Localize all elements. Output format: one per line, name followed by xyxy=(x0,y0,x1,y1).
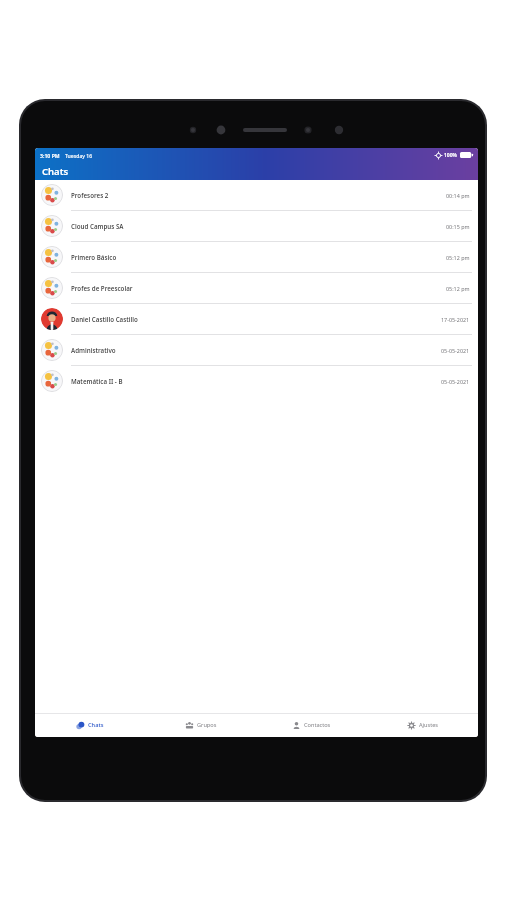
button[interactable]: Profesores 2 xyxy=(35,180,478,211)
staticText: Ajustes xyxy=(419,721,439,729)
staticText: 05:12 pm xyxy=(446,254,470,261)
staticText: Primero Básico xyxy=(71,253,117,261)
staticText: 17-05-2021 xyxy=(441,316,470,323)
button[interactable]: Profes de Preescolar xyxy=(35,273,478,304)
staticText: Daniel Castillo Castillo xyxy=(71,315,138,323)
staticText: 05-05-2021 xyxy=(441,378,470,385)
button[interactable]: Contactos xyxy=(256,713,367,737)
staticText: 3:10 PM xyxy=(40,152,60,159)
staticText: Chats xyxy=(88,721,104,729)
staticText: Cloud Campus SA xyxy=(71,222,124,230)
staticText: 00:14 pm xyxy=(446,192,470,199)
button[interactable]: Chats xyxy=(35,713,145,737)
staticText: Profes de Preescolar xyxy=(71,284,133,292)
button[interactable]: Ajustes xyxy=(367,713,478,737)
staticText: 05:12 pm xyxy=(446,285,470,292)
staticText: Profesores 2 xyxy=(71,191,109,199)
button[interactable]: Cloud Campus SA xyxy=(35,211,478,242)
staticText: 00:15 pm xyxy=(446,223,470,230)
staticText: Matemática II - B xyxy=(71,377,123,385)
staticText: Contactos xyxy=(304,721,331,729)
staticText: 100% xyxy=(444,152,457,159)
staticText: Grupos xyxy=(197,721,217,729)
staticText: Tuesday 16 xyxy=(65,152,93,159)
button[interactable]: Grupos xyxy=(145,713,256,737)
staticText: Administrativo xyxy=(71,346,116,354)
staticText: 05-05-2021 xyxy=(441,347,470,354)
button[interactable]: Primero Básico xyxy=(35,242,478,273)
button[interactable]: Daniel Castillo Castillo xyxy=(35,304,478,335)
staticText: Chats xyxy=(42,165,69,178)
button[interactable]: Administrativo xyxy=(35,335,478,366)
button[interactable]: Matemática II - B xyxy=(35,366,478,396)
